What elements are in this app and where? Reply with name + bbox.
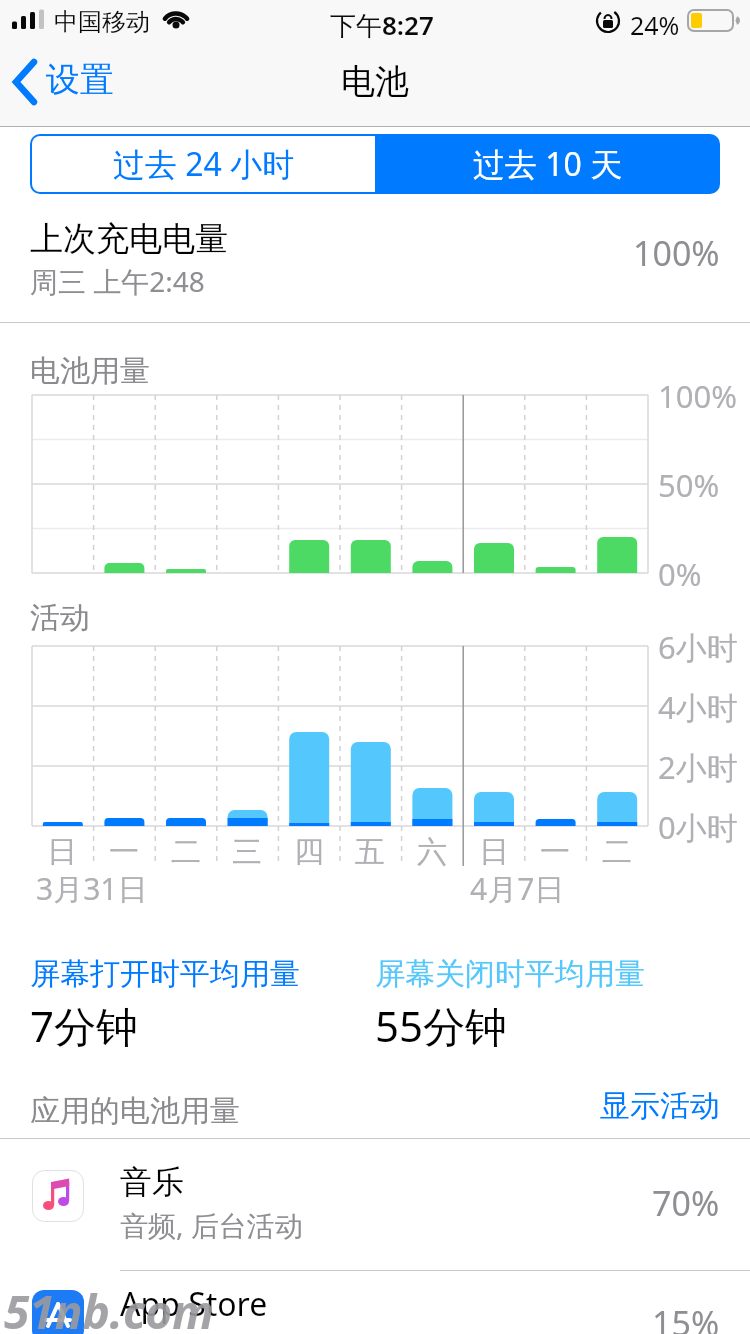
- staticText: 3月31日: [36, 868, 148, 909]
- staticText: 0小时: [658, 806, 738, 848]
- button[interactable]: 显示活动: [520, 1086, 720, 1126]
- staticText: 电池用量: [30, 352, 150, 390]
- staticText: 55分钟: [375, 997, 508, 1054]
- staticText: 24%: [630, 8, 680, 42]
- staticText: 100%: [633, 230, 720, 274]
- staticText: 电池: [341, 60, 409, 103]
- staticText: 音乐: [120, 1162, 184, 1202]
- staticText: 2小时: [658, 746, 738, 788]
- button[interactable]: 过去 10 天: [375, 134, 720, 194]
- staticText: 上次充电电量: [30, 218, 228, 260]
- staticText: 6小时: [658, 626, 738, 668]
- staticText: 三: [232, 833, 262, 869]
- staticText: 中国移动: [54, 7, 150, 37]
- staticText: 100%: [658, 375, 737, 417]
- button[interactable]: [10, 60, 140, 110]
- staticText: 屏幕打开时平均用量: [30, 955, 300, 993]
- button[interactable]: [0, 1271, 750, 1334]
- staticText: 二: [602, 833, 632, 869]
- staticText: 51nb.com: [4, 1280, 214, 1334]
- staticText: 一: [540, 833, 570, 869]
- staticText: 设置: [46, 58, 114, 101]
- staticText: 屏幕关闭时平均用量: [375, 955, 645, 993]
- staticText: 下午8:27: [330, 7, 434, 43]
- staticText: 日: [47, 833, 77, 869]
- staticText: 六: [417, 833, 447, 869]
- staticText: App Store: [120, 1282, 268, 1326]
- staticText: 显示活动: [600, 1087, 720, 1125]
- staticText: 4小时: [658, 686, 738, 728]
- staticText: 活动: [30, 599, 90, 637]
- staticText: 四: [294, 833, 324, 869]
- staticText: 音频, 后台活动: [120, 1206, 303, 1244]
- staticText: 应用的电池用量: [30, 1092, 240, 1130]
- staticText: 0%: [658, 553, 702, 595]
- staticText: 二: [171, 833, 201, 869]
- staticText: 周三 上午2:48: [30, 262, 205, 300]
- staticText: 过去 24 小时: [113, 142, 295, 186]
- staticText: 70%: [652, 1180, 720, 1224]
- staticText: 7分钟: [30, 997, 139, 1054]
- staticText: 一: [109, 833, 139, 869]
- staticText: 过去 10 天: [473, 142, 623, 186]
- button[interactable]: [0, 1139, 750, 1270]
- staticText: 日: [479, 833, 509, 869]
- staticText: 4月7日: [470, 868, 565, 909]
- button[interactable]: 过去 24 小时: [32, 136, 375, 192]
- staticText: 15%: [652, 1300, 720, 1334]
- staticText: 五: [355, 833, 385, 869]
- staticText: 50%: [658, 464, 720, 506]
